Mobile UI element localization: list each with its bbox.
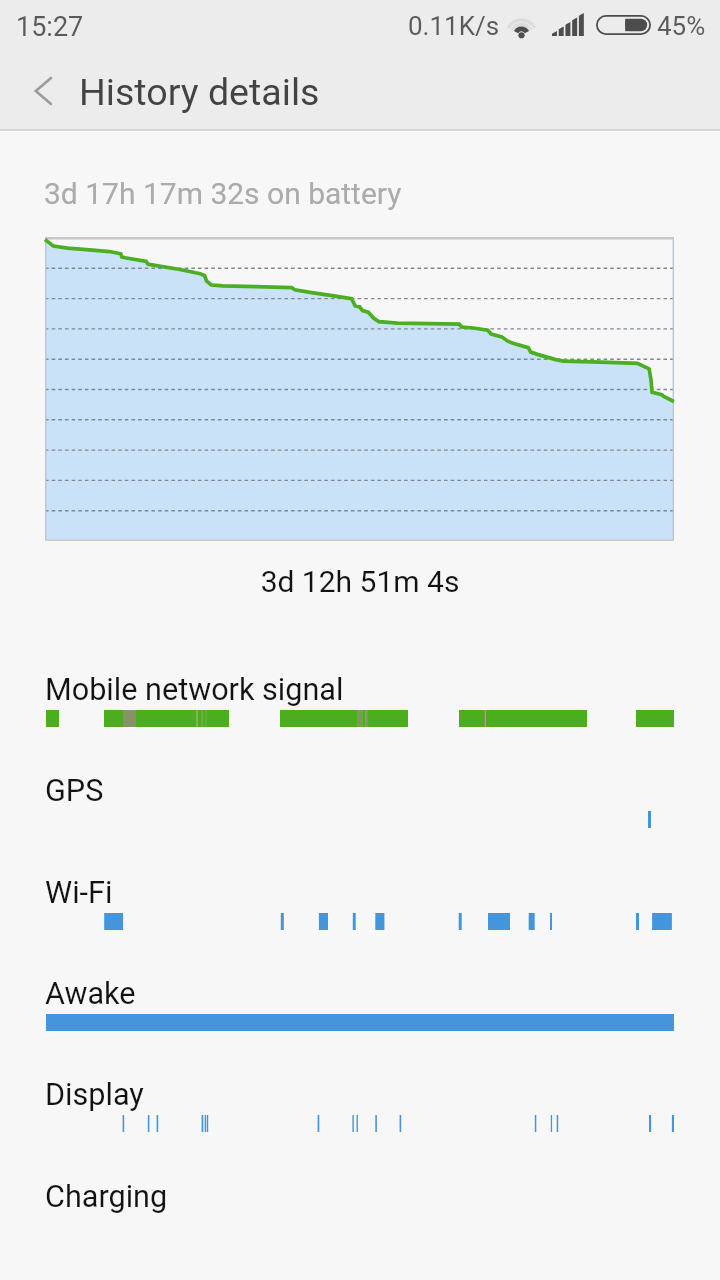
staticText: Awake [45, 976, 136, 1012]
staticText: History details [79, 70, 320, 114]
staticText: 3d 17h 17m 32s on battery [44, 176, 402, 211]
staticText: 45% [657, 11, 706, 41]
staticText: 0.11K/s [408, 11, 500, 41]
staticText: 3d 12h 51m 4s [0, 564, 720, 599]
staticText: 15:27 [16, 11, 84, 43]
staticText: Wi-Fi [45, 875, 113, 911]
button[interactable]: Back [14, 62, 72, 120]
staticText: Mobile network signal [45, 672, 344, 708]
staticText: Charging [45, 1179, 168, 1215]
staticText: Display [45, 1077, 144, 1113]
staticText: GPS [45, 773, 104, 809]
